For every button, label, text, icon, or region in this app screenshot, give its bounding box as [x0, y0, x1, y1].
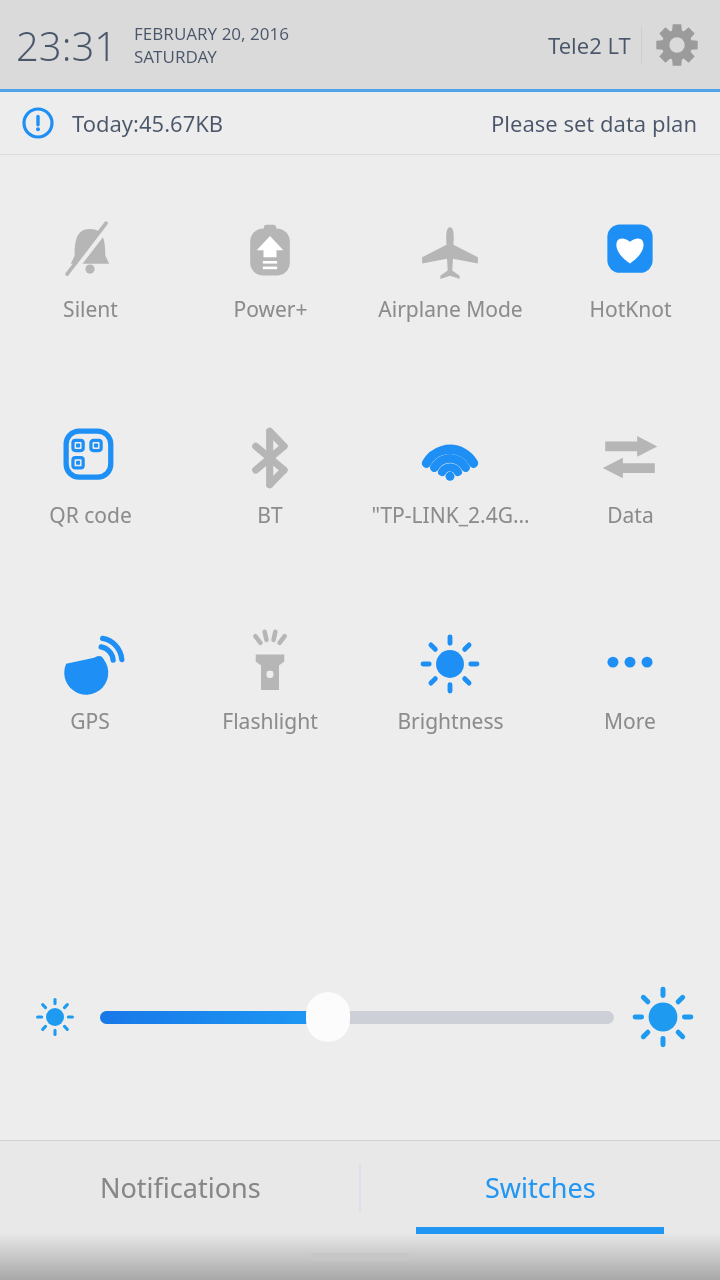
staticText: BT: [257, 501, 283, 530]
staticText: Switches: [485, 1169, 596, 1206]
button[interactable]: Maximum brightness: [630, 984, 696, 1050]
button[interactable]: Power+: [180, 219, 360, 326]
button[interactable]: Today:45.67KB: [0, 92, 720, 154]
staticText: Power+: [233, 295, 308, 324]
staticText: SATURDAY: [134, 45, 217, 68]
button[interactable]: Minimum brightness: [26, 988, 84, 1046]
staticText: Tele2 LT: [548, 30, 631, 60]
button[interactable]: GPS: [0, 631, 180, 738]
staticText: 23:31: [16, 18, 118, 72]
staticText: More: [604, 707, 656, 736]
button[interactable]: Settings: [648, 16, 706, 74]
button[interactable]: "TP-LINK_2.4G…: [360, 425, 540, 532]
staticText: QR code: [49, 501, 132, 530]
button[interactable]: Flashlight: [180, 631, 360, 738]
button[interactable]: Data: [540, 425, 720, 532]
button[interactable]: QR code: [0, 425, 180, 532]
staticText: Flashlight: [222, 707, 318, 736]
button[interactable]: Brightness: [360, 631, 540, 738]
button[interactable]: Switches: [360, 1141, 720, 1234]
button[interactable]: Airplane Mode: [360, 219, 540, 326]
staticText: Data: [607, 501, 654, 530]
staticText: Please set data plan: [491, 108, 698, 138]
button[interactable]: Silent: [0, 219, 180, 326]
staticText: FEBRUARY 20, 2016: [134, 22, 289, 45]
button[interactable]: Notifications: [0, 1141, 360, 1234]
button[interactable]: HotKnot: [540, 219, 720, 326]
staticText: Today:45.67KB: [72, 108, 224, 138]
staticText: Brightness: [397, 707, 504, 736]
staticText: HotKnot: [589, 295, 672, 324]
staticText: "TP-LINK_2.4G…: [371, 501, 530, 530]
staticText: Silent: [63, 295, 118, 324]
button[interactable]: More: [540, 631, 720, 738]
staticText: Airplane Mode: [378, 295, 523, 324]
button[interactable]: BT: [180, 425, 360, 532]
staticText: GPS: [70, 707, 110, 736]
staticText: Notifications: [100, 1169, 261, 1206]
button[interactable]: [100, 992, 614, 1042]
